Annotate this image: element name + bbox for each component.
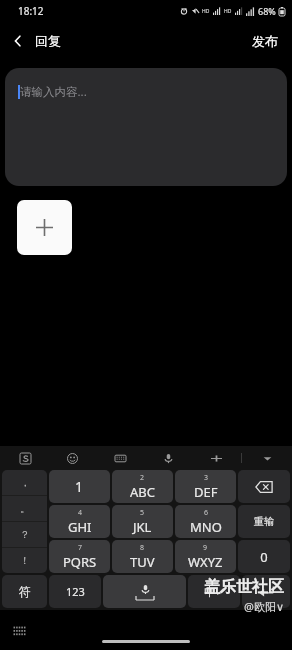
button[interactable]: Enter [242,575,290,608]
button[interactable]: 重输 [238,505,290,538]
button[interactable]: Hide keyboard [8,619,30,641]
staticText: MNO [190,518,222,536]
staticText: 0 [260,548,268,566]
button[interactable]: ？ [2,522,47,547]
button[interactable]: 3 [175,470,236,503]
staticText: 9 [203,543,208,553]
button[interactable]: 0 [238,540,290,573]
staticText: TUV [130,553,155,571]
staticText: 盖乐世社区 [204,577,284,597]
staticText: ？ [20,528,30,541]
staticText: 回复 [35,33,61,49]
button[interactable]: ！ [2,548,47,573]
button[interactable]: Sogou input [14,447,36,469]
button[interactable]: 2 [112,470,173,503]
button[interactable]: 8 [112,540,173,573]
button[interactable]: 5 [112,505,173,538]
button[interactable]: Settings [205,447,227,469]
button[interactable]: Back [0,27,71,55]
button[interactable]: 。 [2,496,47,521]
button[interactable]: 123 [49,575,101,608]
staticText: 请输入内容... [20,84,87,100]
staticText: 3 [204,473,209,483]
button[interactable]: 请输入内容... [5,68,287,186]
button[interactable]: 符 [2,575,47,608]
staticText: 7 [78,543,83,553]
staticText: 8 [140,543,145,553]
button[interactable]: Space, voice input [103,575,186,608]
button[interactable]: 1 [49,470,110,503]
staticText: 2 [140,473,145,483]
staticText: 6 [204,508,209,518]
staticText: ABC [130,483,155,501]
button[interactable]: 7 [49,540,110,573]
staticText: 68% [258,5,276,17]
staticText: PQRS [63,553,97,571]
staticText: 4 [78,508,83,518]
staticText: HD [202,8,210,15]
button[interactable]: Keyboard layout [109,447,131,469]
staticText: 发布 [252,33,278,49]
staticText: 18:12 [18,4,44,18]
button[interactable]: Switch language [188,575,240,608]
button[interactable]: Hide keyboard [256,447,278,469]
staticText: GHI [68,518,92,536]
staticText: 5 [140,508,145,518]
staticText: 1 [75,477,84,496]
staticText: ！ [20,554,30,567]
button[interactable]: 4 [49,505,110,538]
staticText: JKL [133,518,152,536]
staticText: HD [224,8,232,15]
staticText: DEF [194,483,218,501]
staticText: ， [20,476,30,489]
button[interactable]: 9 [175,540,236,573]
button[interactable]: 发布 [238,25,292,57]
staticText: @欧阳∨ [244,599,284,614]
button[interactable]: 6 [175,505,236,538]
staticText: 123 [66,584,85,599]
button[interactable]: Emoji [61,447,83,469]
button[interactable]: Voice input [157,447,179,469]
staticText: 。 [20,502,30,515]
staticText: 符 [19,584,31,599]
button[interactable]: ， [2,470,47,495]
staticText: 中 [204,584,216,599]
staticText: WXYZ [188,553,223,571]
button[interactable]: Backspace [238,470,290,503]
button[interactable]: Add image [17,200,72,255]
staticText: 重输 [254,515,274,528]
other: Back [10,33,26,49]
